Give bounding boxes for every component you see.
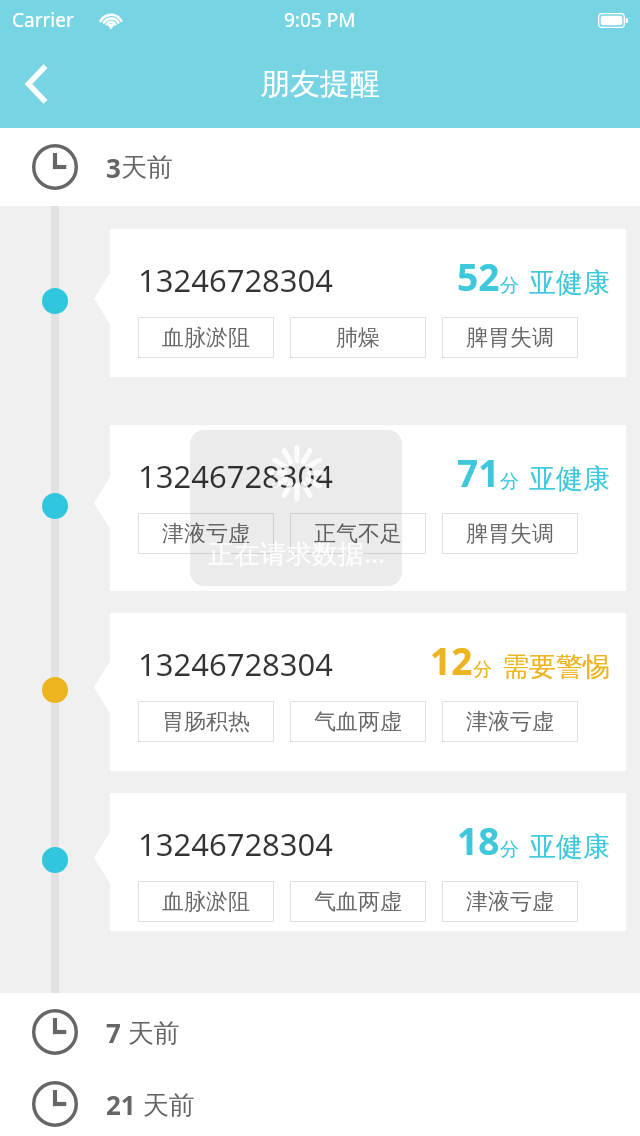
staticText: 12 [430, 635, 473, 685]
staticText: 7 [106, 1015, 121, 1050]
button[interactable]: 气血两虚 [290, 881, 426, 922]
staticText: 71 [457, 447, 500, 497]
button[interactable]: 13246728304 [94, 425, 626, 591]
staticText: 分 [500, 274, 519, 298]
staticText: 52 [457, 251, 500, 301]
staticText: 18 [457, 815, 500, 865]
button[interactable]: 7 [0, 993, 640, 1071]
staticText: 亚健康 [529, 266, 610, 300]
staticText: 9:05 PM [284, 7, 356, 33]
staticText: 脾胃失调 [466, 520, 554, 548]
staticText: 津液亏虚 [466, 888, 554, 916]
button[interactable]: 正气不足 [290, 513, 426, 554]
staticText: 分 [500, 838, 519, 862]
staticText: 肺燥 [336, 324, 380, 352]
button[interactable]: 13246728304 [94, 793, 626, 931]
button[interactable]: 津液亏虚 [138, 513, 274, 554]
button[interactable]: 胃肠积热 [138, 701, 274, 742]
staticText: Carrier [12, 7, 74, 33]
staticText: 13246728304 [138, 259, 334, 301]
button[interactable]: 13246728304 [94, 229, 626, 377]
staticText: 天前 [121, 151, 173, 184]
staticText: 天前 [121, 1014, 180, 1050]
staticText: 需要警惕 [502, 650, 610, 684]
button[interactable]: 津液亏虚 [442, 701, 578, 742]
button[interactable]: 气血两虚 [290, 701, 426, 742]
staticText: 13246728304 [138, 643, 334, 685]
button[interactable]: 13246728304 [94, 613, 626, 771]
staticText: 天前 [136, 1086, 195, 1122]
staticText: 津液亏虚 [466, 708, 554, 736]
staticText: 气血两虚 [314, 888, 402, 916]
staticText: 分 [500, 470, 519, 494]
staticText: 亚健康 [529, 462, 610, 496]
button[interactable]: 血脉淤阻 [138, 881, 274, 922]
staticText: 胃肠积热 [162, 708, 250, 736]
button[interactable]: 3 [0, 128, 640, 206]
staticText: 正在请求数据... [208, 535, 385, 571]
staticText: 血脉淤阻 [162, 324, 250, 352]
staticText: 血脉淤阻 [162, 888, 250, 916]
staticText: 津液亏虚 [162, 520, 250, 548]
staticText: 21 [106, 1087, 136, 1122]
button[interactable]: Back [0, 48, 72, 120]
staticText: 脾胃失调 [466, 324, 554, 352]
button[interactable]: 津液亏虚 [442, 881, 578, 922]
staticText: 气血两虚 [314, 708, 402, 736]
button[interactable]: 21 [0, 1071, 640, 1136]
staticText: 分 [473, 658, 492, 682]
staticText: 13246728304 [138, 455, 334, 497]
button[interactable]: 脾胃失调 [442, 317, 578, 358]
button[interactable]: 血脉淤阻 [138, 317, 274, 358]
staticText: 13246728304 [138, 823, 334, 865]
staticText: 3 [106, 150, 121, 185]
staticText: 正气不足 [314, 520, 402, 548]
staticText: 朋友提醒 [260, 65, 380, 103]
button[interactable]: 脾胃失调 [442, 513, 578, 554]
staticText: 亚健康 [529, 830, 610, 864]
button[interactable]: 肺燥 [290, 317, 426, 358]
